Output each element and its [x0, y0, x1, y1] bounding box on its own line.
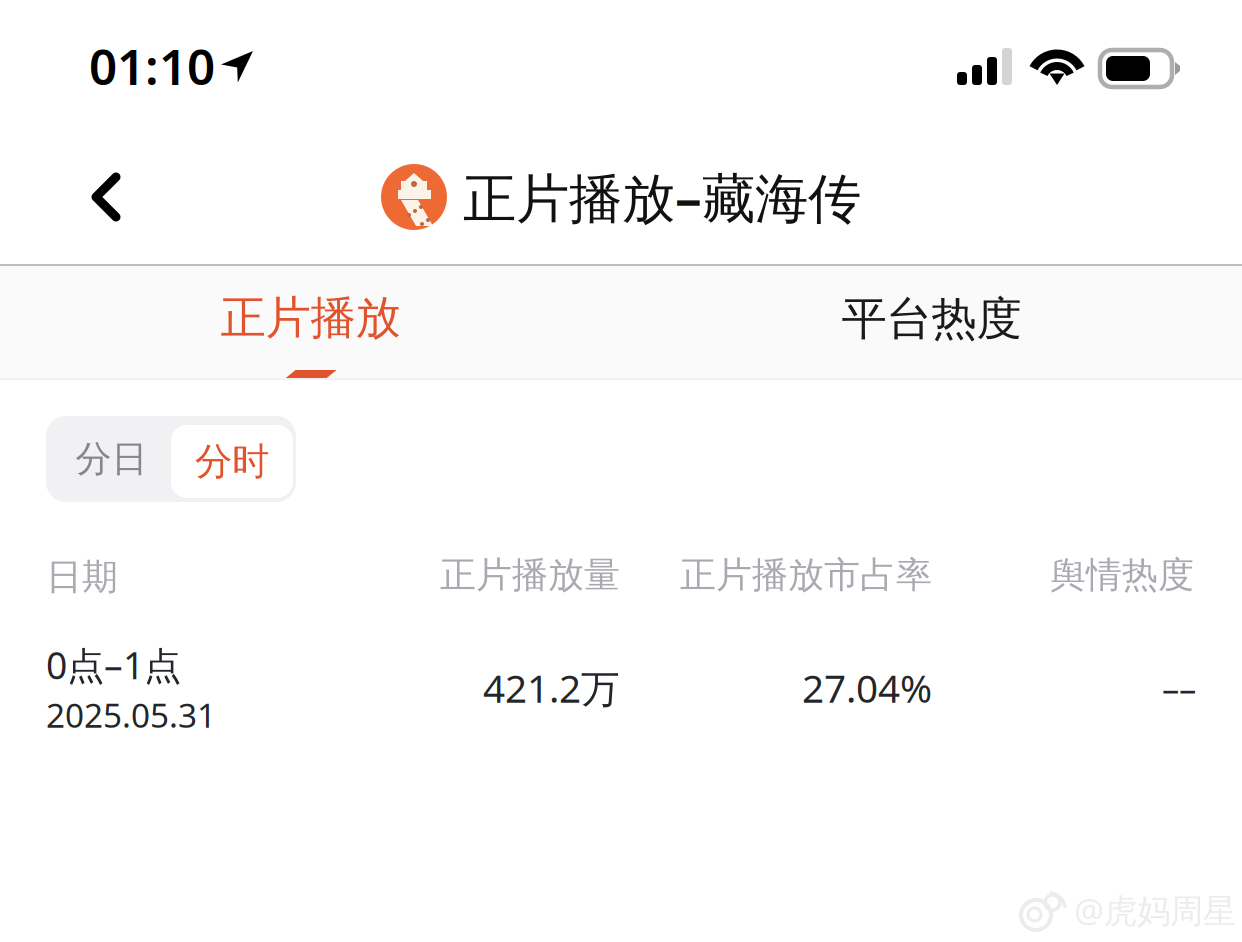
staticText: 平台热度: [841, 291, 1021, 347]
button[interactable]: 分时: [171, 425, 293, 498]
staticText: 分日: [75, 437, 147, 481]
staticText: 正片播放: [220, 290, 400, 346]
staticText: 正片播放–藏海传: [463, 162, 861, 232]
staticText: @虎妈周星: [1074, 888, 1236, 932]
staticText: 421.2万: [483, 662, 620, 713]
staticText: 舆情热度: [1050, 553, 1194, 597]
button[interactable]: Back: [58, 147, 154, 247]
staticText: 分时: [195, 439, 269, 484]
staticText: 27.04%: [802, 662, 932, 713]
staticText: 0点–1点: [46, 640, 181, 690]
staticText: 日期: [46, 555, 118, 599]
staticText: 正片播放市占率: [680, 553, 932, 597]
button[interactable]: 正片播放: [0, 266, 621, 378]
staticText: ––: [1162, 665, 1196, 711]
staticText: 2025.05.31: [46, 693, 216, 737]
button[interactable]: 分日: [46, 416, 174, 502]
button[interactable]: 平台热度: [621, 266, 1242, 378]
staticText: 01:10: [89, 33, 215, 98]
staticText: 正片播放量: [440, 553, 620, 597]
